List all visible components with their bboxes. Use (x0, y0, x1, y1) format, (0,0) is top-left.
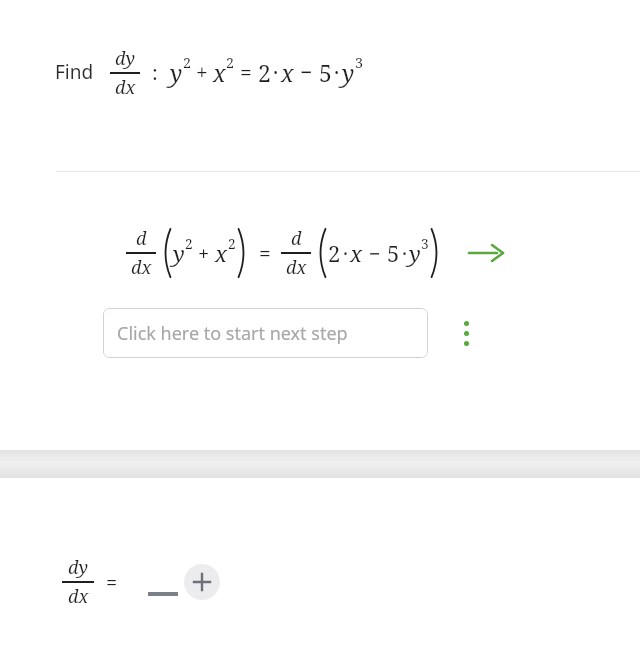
staticText: 2 (228, 234, 236, 253)
staticText: y (170, 57, 183, 88)
staticText: 3 (355, 53, 363, 72)
staticText: − (369, 240, 381, 267)
staticText: dy (68, 555, 88, 580)
staticText: 5 (387, 238, 400, 268)
button[interactable]: Add term (184, 564, 220, 600)
staticText: y (173, 238, 185, 268)
staticText: y (342, 57, 355, 88)
staticText: 2 (183, 53, 191, 72)
staticText: · (334, 58, 340, 87)
staticText: Find (55, 59, 94, 85)
staticText: · (402, 240, 407, 267)
staticText: x (215, 238, 228, 268)
staticText: 5 (319, 57, 332, 88)
staticText: = (240, 58, 252, 87)
staticText: x (213, 57, 226, 88)
staticText: y (409, 238, 421, 268)
staticText: − (300, 58, 313, 87)
staticText: 2 (226, 53, 234, 72)
staticText: 2 (185, 234, 193, 253)
staticText: Click here to start next step (117, 321, 348, 346)
staticText: · (273, 58, 279, 87)
staticText: dx (286, 255, 307, 280)
staticText: dx (68, 584, 89, 609)
staticText: 2 (328, 238, 341, 268)
staticText: : (152, 59, 158, 86)
staticText: + (198, 240, 210, 267)
staticText: dx (115, 75, 136, 98)
staticText: d (291, 226, 302, 251)
staticText: + (196, 58, 208, 87)
staticText: 3 (421, 234, 429, 253)
staticText: dy (115, 46, 135, 71)
staticText: dx (131, 255, 152, 280)
staticText: 2 (258, 57, 271, 88)
staticText: · (343, 240, 348, 267)
staticText: x (281, 57, 294, 88)
staticText: d (136, 226, 147, 251)
button[interactable]: Click here to start next step (103, 308, 428, 358)
staticText: = (259, 239, 271, 268)
button[interactable]: Next step (464, 233, 508, 273)
staticText: = (106, 569, 118, 596)
staticText: x (350, 238, 363, 268)
button[interactable]: More options (448, 308, 484, 358)
